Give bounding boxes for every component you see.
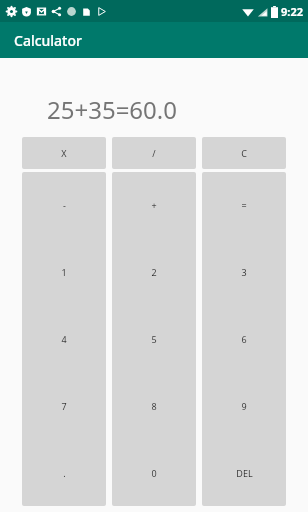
- button[interactable]: 5: [112, 305, 196, 372]
- staticText: 4: [61, 333, 67, 345]
- staticText: C: [241, 147, 247, 159]
- staticText: 1: [61, 266, 67, 278]
- staticText: 2: [151, 266, 157, 278]
- button[interactable]: 3: [202, 238, 286, 305]
- button[interactable]: 9: [202, 372, 286, 439]
- staticText: 8: [151, 400, 157, 412]
- button[interactable]: 8: [112, 372, 196, 439]
- staticText: 0: [151, 467, 157, 479]
- button[interactable]: 1: [22, 238, 106, 305]
- button[interactable]: =: [202, 172, 286, 238]
- staticText: /: [152, 147, 156, 159]
- staticText: =: [241, 199, 247, 211]
- staticText: 5: [151, 333, 157, 345]
- staticText: DEL: [236, 467, 253, 479]
- button[interactable]: 7: [22, 372, 106, 439]
- button[interactable]: 4: [22, 305, 106, 372]
- button[interactable]: /: [112, 137, 196, 169]
- staticText: .: [63, 467, 66, 479]
- staticText: 9:22: [281, 4, 303, 19]
- staticText: 6: [241, 333, 247, 345]
- button[interactable]: 2: [112, 238, 196, 305]
- staticText: 3: [241, 266, 247, 278]
- staticText: +: [151, 199, 157, 211]
- staticText: 9: [241, 400, 247, 412]
- staticText: 25+35=60.0: [47, 93, 177, 126]
- button[interactable]: 0: [112, 439, 196, 506]
- button[interactable]: +: [112, 172, 196, 238]
- staticText: X: [61, 147, 67, 159]
- button[interactable]: 6: [202, 305, 286, 372]
- staticText: -: [63, 199, 66, 211]
- staticText: 7: [61, 400, 67, 412]
- staticText: Calculator: [14, 31, 82, 50]
- button[interactable]: DEL: [202, 439, 286, 506]
- button[interactable]: C: [202, 137, 286, 169]
- button[interactable]: X: [22, 137, 106, 169]
